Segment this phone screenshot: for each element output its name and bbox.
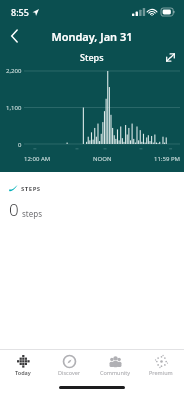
staticText: Premium [149, 369, 173, 376]
staticText: 0 [9, 198, 19, 221]
staticText: STEPS [21, 185, 41, 193]
staticText: 2,200 [6, 67, 22, 75]
staticText: 1,100 [6, 104, 22, 112]
staticText: Monday, Jan 31 [51, 29, 133, 44]
staticText: Steps [80, 51, 104, 63]
button[interactable]: Expand chart [162, 50, 178, 64]
staticText: Community [100, 369, 131, 376]
button[interactable]: Discover [46, 350, 92, 380]
button[interactable]: Today [0, 350, 46, 380]
staticText: 11:59 PM [154, 155, 180, 163]
staticText: 12:00 AM [24, 155, 51, 163]
button[interactable]: Premium [138, 350, 184, 380]
button[interactable]: Back [0, 24, 28, 48]
staticText: 0 [18, 141, 22, 149]
staticText: Discover [58, 369, 81, 376]
button[interactable]: Community [92, 350, 138, 380]
staticText: NOON [93, 155, 112, 163]
staticText: Today [15, 369, 31, 376]
staticText: 8:55 [11, 6, 29, 18]
staticText: steps [22, 208, 42, 219]
